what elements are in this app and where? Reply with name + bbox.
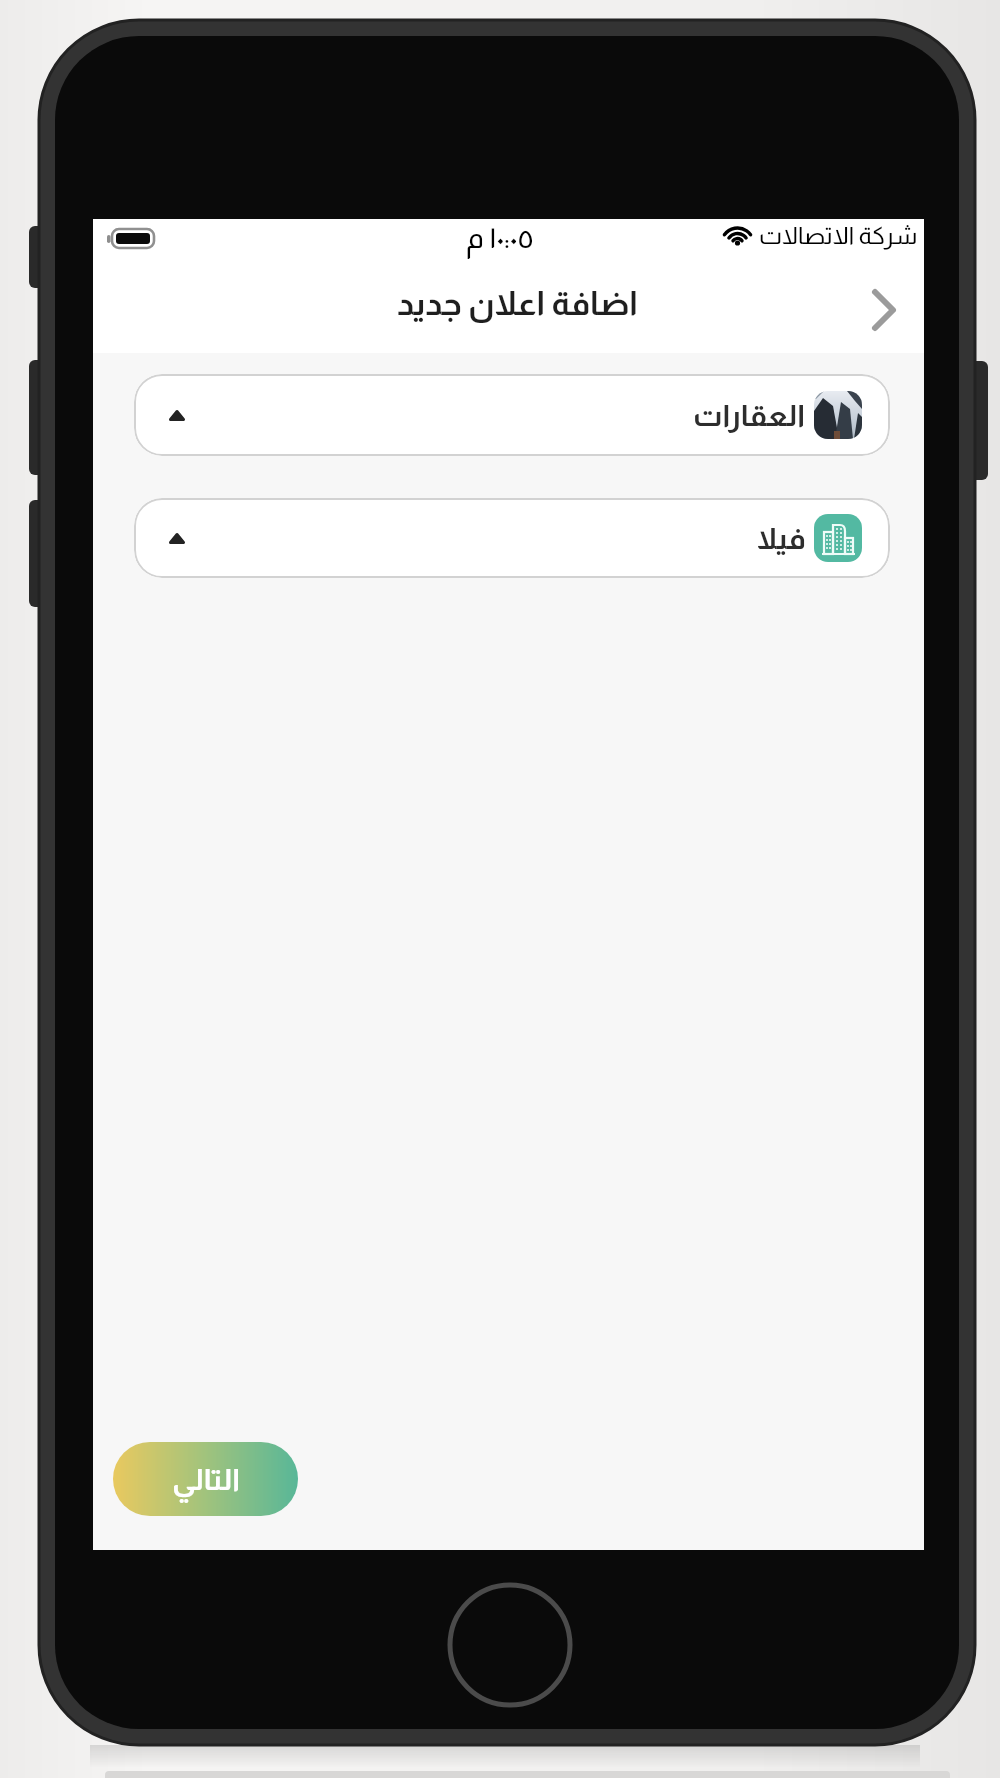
- button[interactable]: [871, 288, 899, 332]
- staticText: ١٠:٠٥ م: [466, 222, 534, 254]
- staticText: العقارات: [693, 399, 806, 432]
- staticText: اضافة اعلان جديد: [102, 285, 933, 322]
- button[interactable]: التالي: [113, 1442, 298, 1516]
- staticText: فيلا: [757, 522, 806, 555]
- button[interactable]: العقارات: [134, 374, 890, 456]
- staticText: شركة الاتصالات: [759, 222, 918, 249]
- staticText: التالي: [172, 1463, 240, 1496]
- button[interactable]: فيلا: [134, 498, 890, 578]
